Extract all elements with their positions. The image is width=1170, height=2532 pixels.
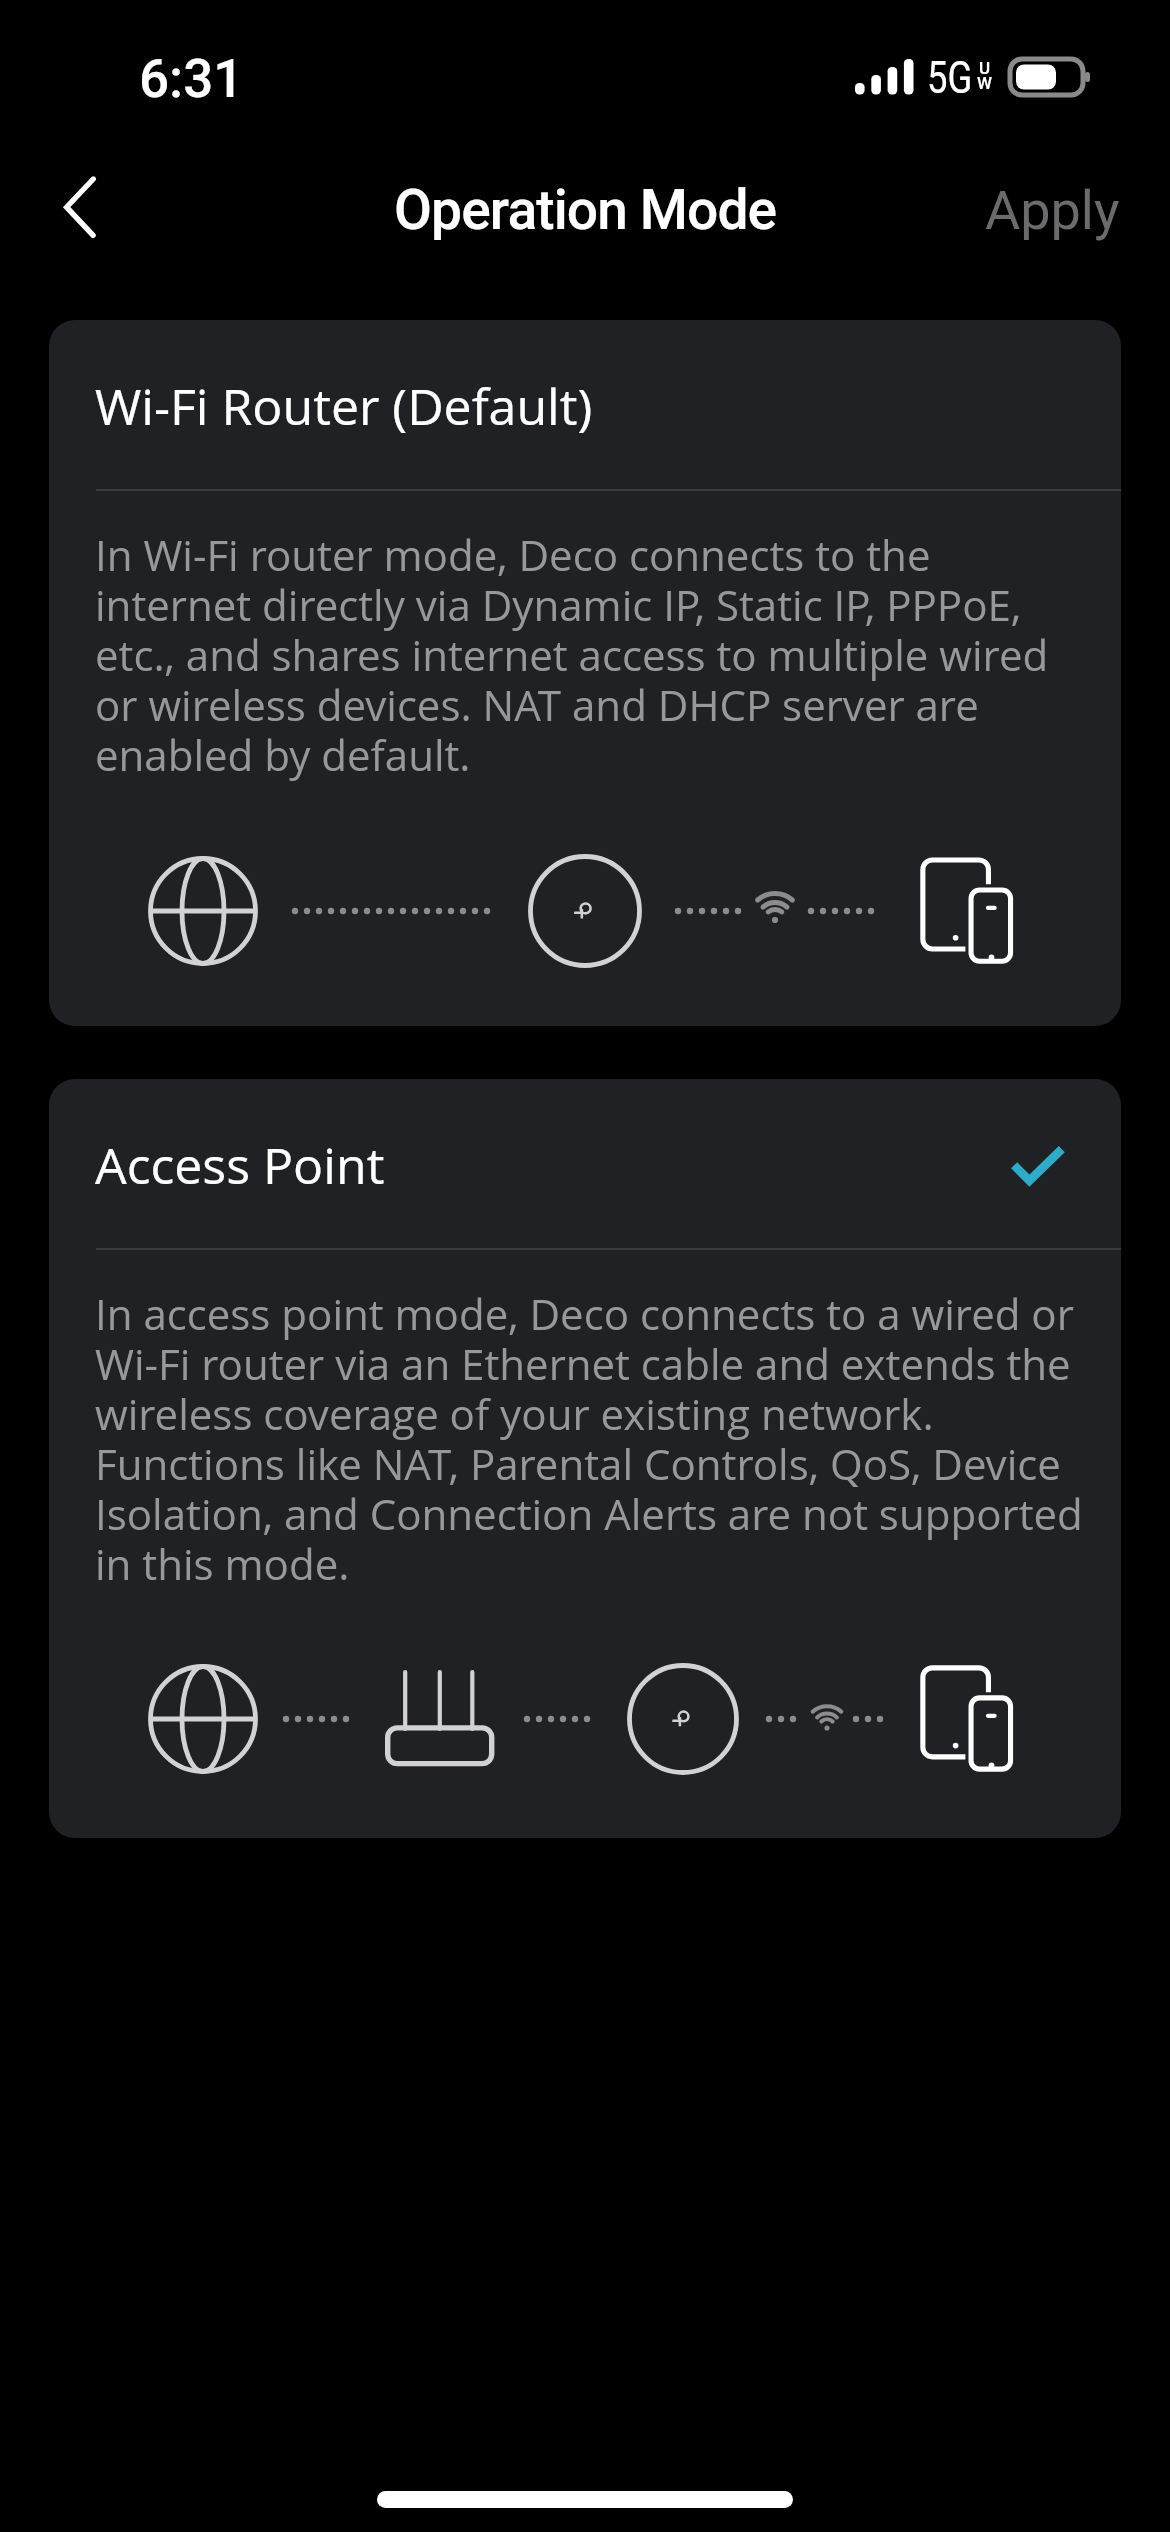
staticText: 5G bbox=[927, 51, 972, 104]
button[interactable]: Apply bbox=[935, 155, 1170, 266]
staticText: W bbox=[977, 73, 992, 93]
staticText: Operation Mode bbox=[394, 178, 777, 242]
button[interactable]: Wi-Fi Router (Default) bbox=[49, 320, 1121, 1026]
staticText: 6:31 bbox=[139, 48, 244, 110]
staticText: In Wi-Fi router mode, Deco connects to t… bbox=[95, 532, 1090, 782]
staticText: Wi-Fi Router (Default) bbox=[95, 372, 593, 440]
staticText: Access Point bbox=[95, 1131, 385, 1199]
button[interactable]: Access Point bbox=[49, 1079, 1121, 1838]
staticText: U bbox=[979, 58, 991, 78]
staticText: Apply bbox=[985, 179, 1120, 242]
staticText: In access point mode, Deco connects to a… bbox=[95, 1291, 1090, 1591]
button[interactable]: Back bbox=[20, 150, 130, 270]
